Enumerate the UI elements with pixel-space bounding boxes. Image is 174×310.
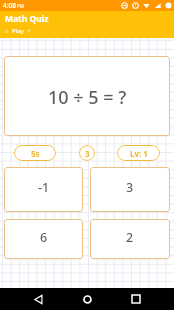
- staticText: Math Quiz: [5, 13, 49, 25]
- staticText: 10 ÷ 5 = ?: [48, 85, 127, 110]
- staticText: PM: [17, 3, 24, 9]
- button[interactable]: -1: [4, 167, 83, 212]
- button[interactable]: Lv: 1: [117, 145, 160, 161]
- button[interactable]: Back: [27, 288, 49, 310]
- staticText: 3: [126, 179, 134, 196]
- staticText: Lv: 1: [130, 148, 148, 159]
- staticText: 2: [126, 229, 134, 246]
- staticText: 3: [85, 148, 90, 159]
- staticText: -1: [38, 179, 50, 196]
- staticText: 4:08: [3, 1, 16, 10]
- staticText: 6: [40, 229, 48, 246]
- staticText: +: [27, 27, 31, 35]
- button[interactable]: 3: [79, 145, 95, 161]
- button[interactable]: 6: [4, 219, 83, 259]
- button[interactable]: Home: [76, 288, 98, 310]
- button[interactable]: Recents: [125, 288, 147, 310]
- staticText: 5s: [31, 148, 40, 159]
- button[interactable]: 2: [90, 219, 170, 259]
- staticText: x: [5, 27, 9, 35]
- button[interactable]: 3: [90, 167, 170, 212]
- staticText: Play: [12, 27, 24, 35]
- button[interactable]: 5s: [14, 145, 56, 161]
